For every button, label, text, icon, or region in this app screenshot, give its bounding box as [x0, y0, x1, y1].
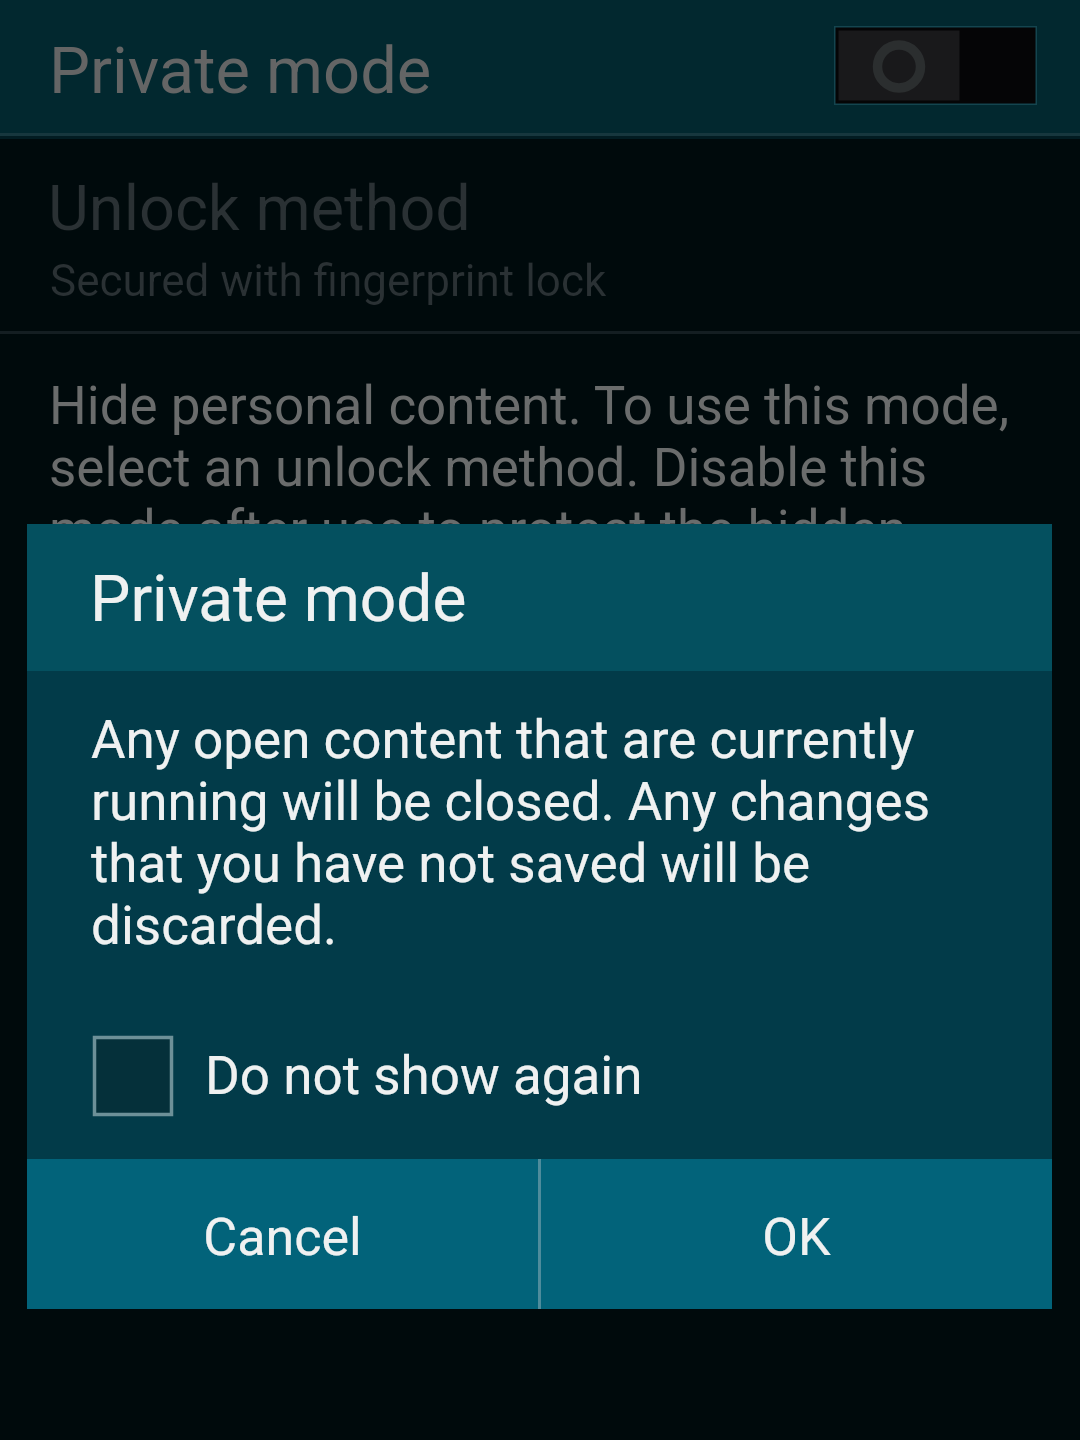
staticText: Cancel	[203, 1207, 362, 1268]
staticText: OK	[762, 1207, 831, 1268]
staticText: Do not show again	[205, 1045, 643, 1107]
button[interactable]	[0, 135, 1080, 332]
button[interactable]: Do not show again	[27, 1018, 1052, 1133]
staticText: Unlock method	[48, 172, 471, 246]
button[interactable]: Private mode toggle	[834, 26, 1037, 105]
staticText: Any open content that are currently runn…	[91, 709, 991, 957]
button[interactable]: OK	[541, 1159, 1052, 1309]
button[interactable]	[0, 0, 1080, 133]
staticText: Hide personal content. To use this mode,…	[49, 375, 1034, 623]
staticText: Secured with fingerprint lock	[50, 255, 607, 307]
staticText: Private mode	[90, 562, 467, 637]
staticText: Private mode	[49, 33, 432, 109]
button[interactable]: Cancel	[27, 1159, 538, 1309]
